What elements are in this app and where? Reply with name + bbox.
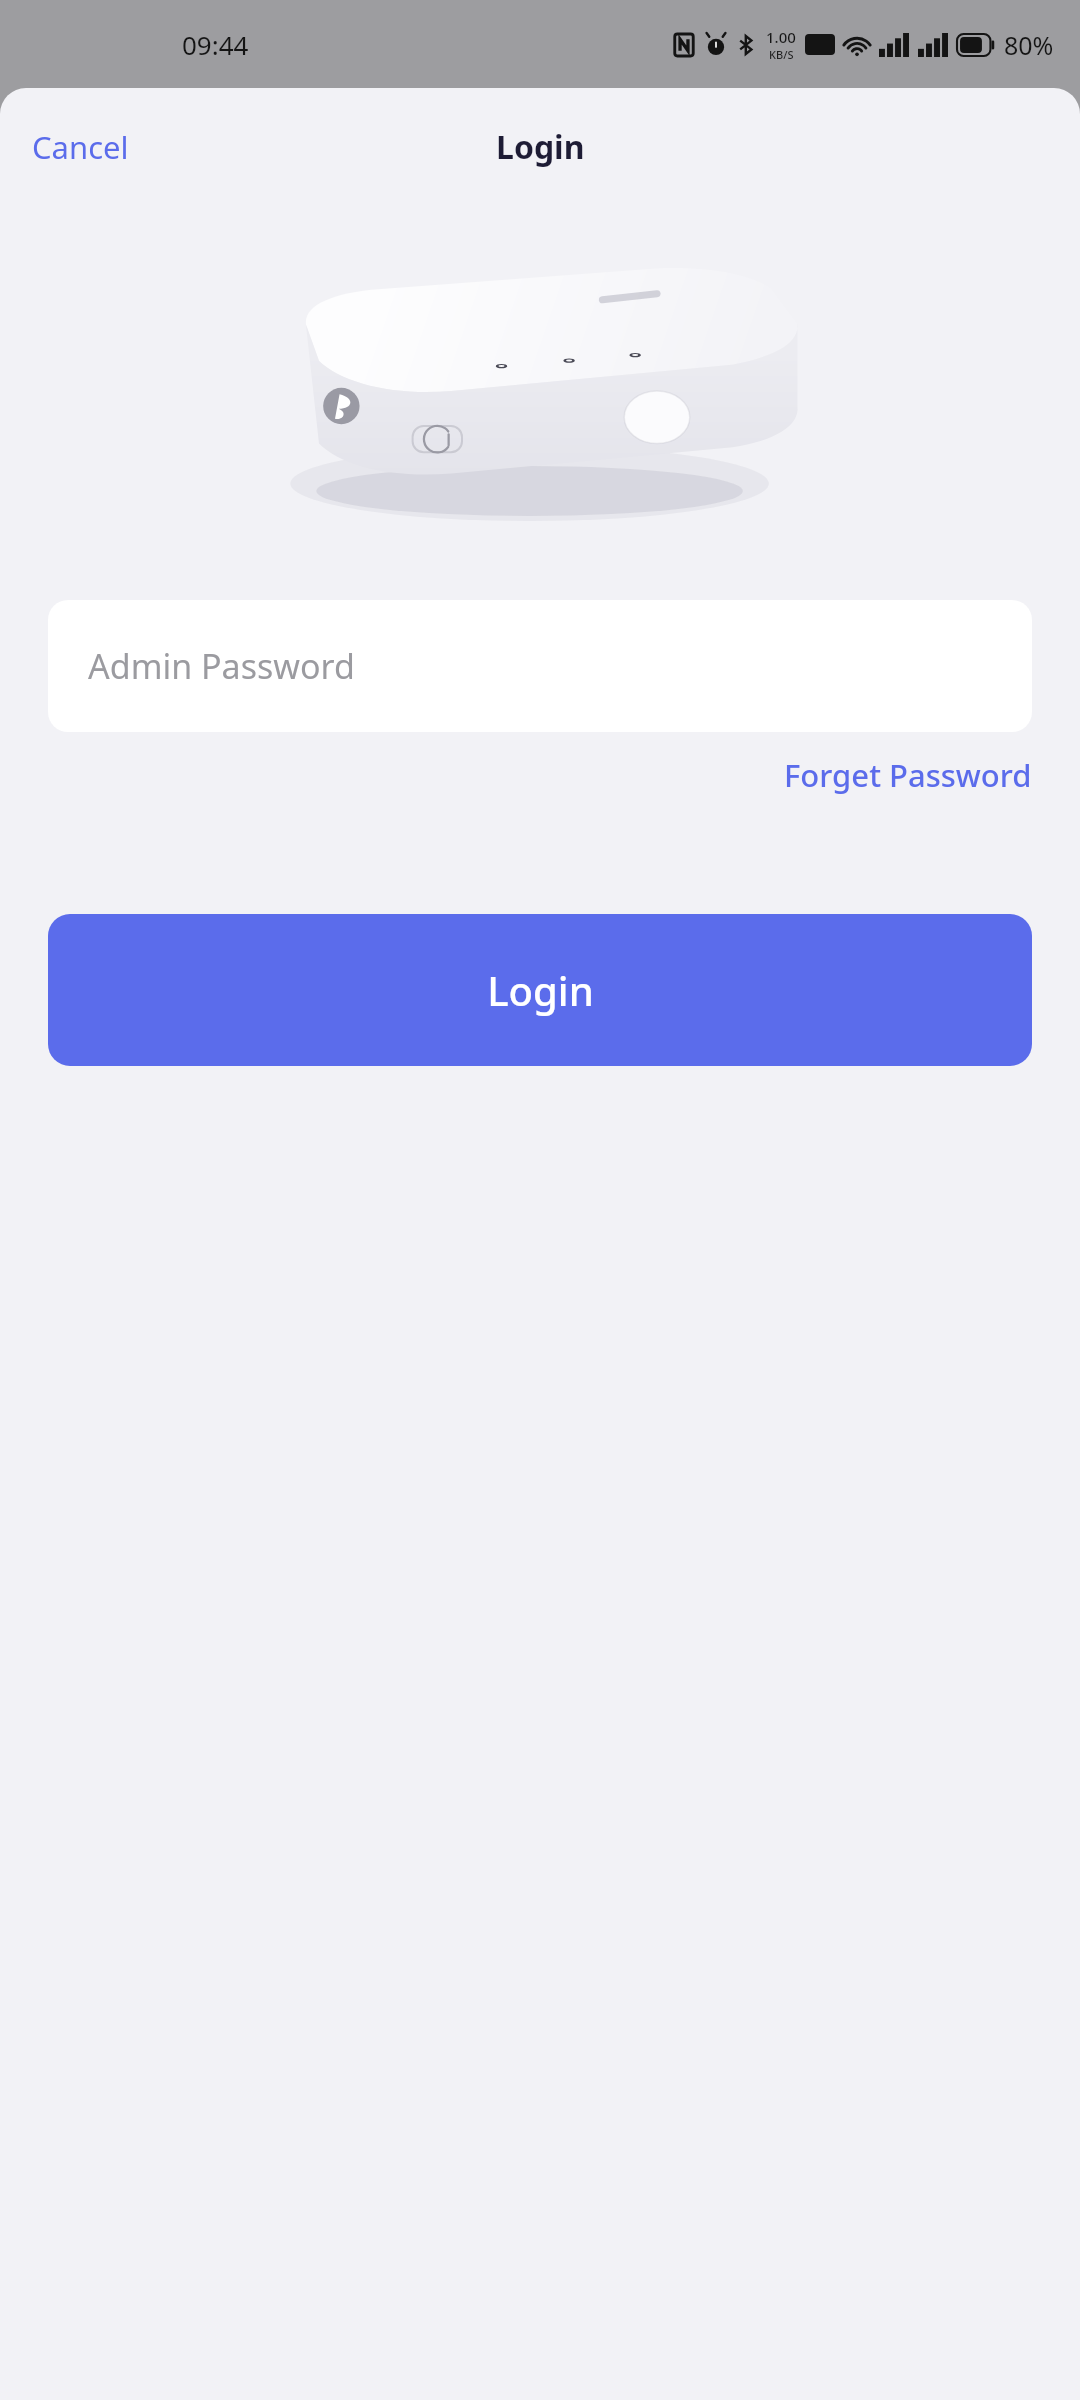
staticText: Admin Password — [88, 643, 355, 689]
staticText: Forget Password — [784, 754, 1032, 796]
button[interactable]: Login — [48, 914, 1032, 1066]
button[interactable]: Admin Password — [48, 600, 1032, 732]
button[interactable]: Cancel — [0, 118, 161, 176]
staticText: 1.00 — [766, 27, 796, 47]
staticText: Cancel — [32, 126, 129, 168]
staticText: KB/S — [769, 47, 794, 62]
staticText: 80% — [1004, 28, 1054, 62]
staticText: Login — [487, 963, 594, 1017]
button[interactable]: Forget Password — [736, 740, 1080, 810]
staticText: 09:44 — [182, 27, 249, 62]
staticText: Login — [496, 125, 585, 169]
